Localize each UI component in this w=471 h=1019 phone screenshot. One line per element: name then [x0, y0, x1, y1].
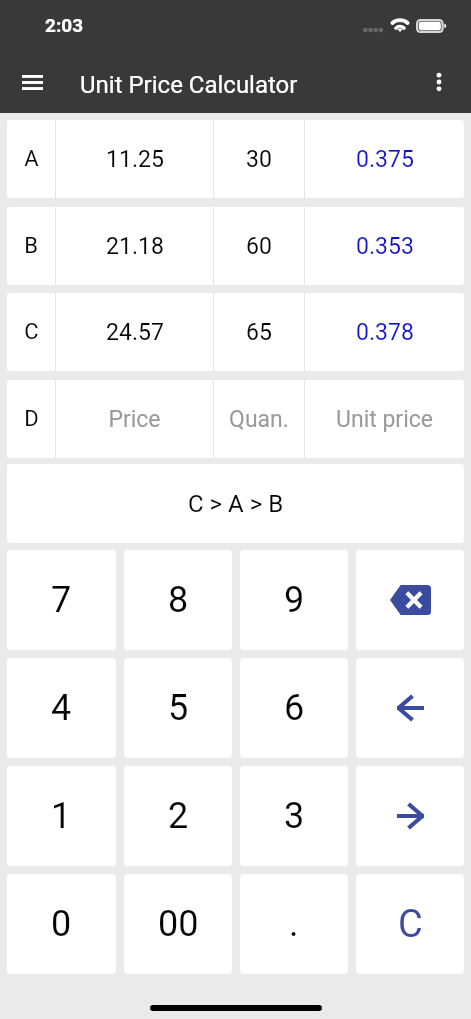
staticText: 2 — [168, 795, 189, 837]
staticText: Unit price — [336, 406, 433, 433]
staticText: B — [24, 233, 38, 259]
button[interactable]: 1 — [7, 766, 116, 866]
button[interactable]: 2 — [124, 766, 232, 866]
staticText: 9 — [284, 579, 305, 621]
button[interactable]: 8 — [124, 550, 232, 650]
staticText: Quan. — [229, 406, 289, 433]
button[interactable]: B — [7, 207, 464, 285]
staticText: 21.18 — [106, 233, 164, 260]
staticText: 6 — [284, 687, 305, 729]
staticText: 00 — [158, 903, 199, 945]
button[interactable]: 4 — [7, 658, 116, 758]
staticText: 0.353 — [356, 233, 414, 260]
staticText: 7 — [51, 579, 72, 621]
button[interactable]: More options — [418, 56, 460, 98]
staticText: 0.375 — [356, 146, 414, 173]
button[interactable]: C > A > B — [7, 464, 464, 543]
staticText: 24.57 — [106, 319, 164, 346]
staticText: . — [289, 903, 299, 945]
staticText: 4 — [51, 687, 72, 729]
staticText: Price — [108, 406, 161, 433]
button[interactable]: Backspace — [356, 550, 464, 650]
button[interactable]: C — [356, 874, 464, 974]
button[interactable]: A — [7, 120, 464, 198]
button[interactable]: 9 — [240, 550, 348, 650]
staticText: 5 — [168, 687, 189, 729]
staticText: 1 — [51, 795, 72, 837]
button[interactable]: 5 — [124, 658, 232, 758]
staticText: C — [24, 319, 39, 345]
button[interactable]: . — [240, 874, 348, 974]
button[interactable]: Menu — [1, 56, 43, 98]
button[interactable]: 6 — [240, 658, 348, 758]
staticText: 2:03 — [45, 14, 84, 36]
button[interactable]: 0 — [7, 874, 116, 974]
staticText: 8 — [168, 579, 189, 621]
staticText: 30 — [246, 146, 272, 173]
staticText: A — [24, 146, 39, 172]
staticText: 3 — [284, 795, 305, 837]
staticText: C — [398, 902, 423, 947]
staticText: 65 — [246, 319, 272, 346]
staticText: D — [24, 406, 39, 432]
button[interactable]: Move left — [356, 658, 464, 758]
button[interactable]: 7 — [7, 550, 116, 650]
button[interactable]: 00 — [124, 874, 232, 974]
staticText: C > A > B — [188, 490, 284, 518]
button[interactable]: C — [7, 293, 464, 371]
button[interactable]: 3 — [240, 766, 348, 866]
staticText: Unit Price Calculator — [80, 71, 298, 99]
staticText: 0.378 — [356, 319, 414, 346]
staticText: 11.25 — [106, 146, 164, 173]
staticText: 60 — [246, 233, 272, 260]
button[interactable]: D — [7, 380, 464, 458]
button[interactable]: Move right — [356, 766, 464, 866]
staticText: 0 — [51, 903, 72, 945]
